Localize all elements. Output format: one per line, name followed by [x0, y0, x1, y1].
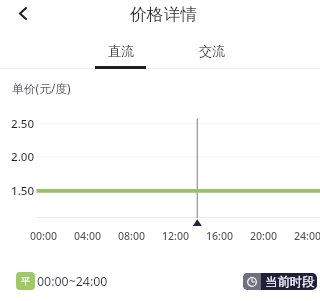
staticText: 直流 [108, 43, 135, 60]
staticText: 24:00 [294, 229, 320, 243]
staticText: 1.50 [11, 183, 35, 199]
staticText: 价格详情 [130, 4, 198, 25]
staticText: 12:00 [162, 229, 190, 243]
staticText: 00:00 [30, 229, 58, 243]
button[interactable]: 直流 [95, 38, 147, 68]
staticText: 平 [21, 275, 31, 287]
staticText: 交流 [199, 43, 226, 60]
staticText: 当前时段 [265, 274, 315, 290]
button[interactable]: Back [8, 0, 38, 26]
button[interactable]: 平 [16, 272, 108, 290]
staticText: 2.50 [11, 116, 35, 132]
button[interactable]: 当前时段 [243, 273, 317, 290]
staticText: 20:00 [250, 229, 278, 243]
staticText: 单价(元/度) [12, 80, 71, 96]
staticText: 00:00~24:00 [37, 273, 108, 290]
staticText: 16:00 [206, 229, 234, 243]
button[interactable]: 交流 [186, 38, 238, 68]
staticText: 2.00 [11, 149, 35, 165]
staticText: 08:00 [118, 229, 146, 243]
staticText: 04:00 [74, 229, 102, 243]
